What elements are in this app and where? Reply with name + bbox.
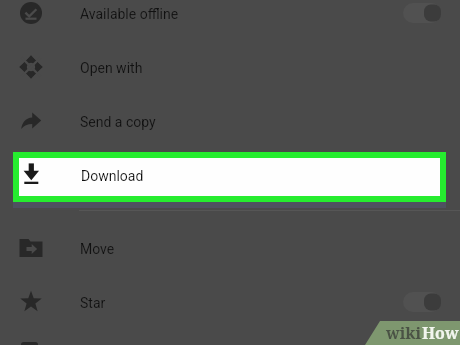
staticText: Download [81, 168, 144, 184]
staticText: wiki [386, 322, 422, 344]
button[interactable]: Download [19, 158, 440, 196]
button[interactable]: Available offline [0, 0, 460, 40]
button[interactable]: Star [0, 275, 460, 329]
staticText: How [422, 322, 459, 344]
staticText: Available offline [80, 6, 179, 22]
staticText: Move [80, 241, 115, 257]
button[interactable]: Toggle Available offline [403, 3, 441, 23]
staticText: Open with [80, 60, 143, 76]
button[interactable]: Open with [0, 40, 460, 94]
button[interactable]: Move [0, 221, 460, 275]
staticText: Send a copy [80, 114, 156, 130]
staticText: Star [80, 295, 106, 311]
button[interactable]: Send a copy [0, 94, 460, 148]
button[interactable]: Toggle Star [403, 292, 441, 312]
